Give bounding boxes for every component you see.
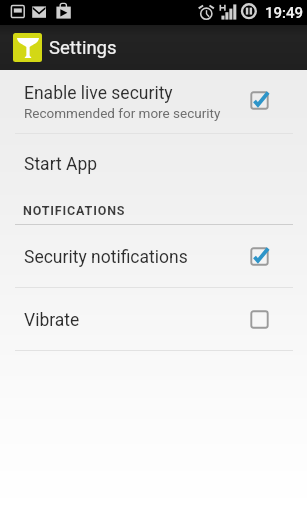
button[interactable]: Enabled	[247, 88, 272, 113]
staticText: Security notifications	[24, 247, 188, 268]
staticText: Settings	[49, 37, 117, 59]
button[interactable]: Vibrate	[0, 287, 307, 350]
button[interactable]: Security notifications	[0, 224, 307, 287]
staticText: Vibrate	[24, 310, 80, 331]
staticText: Enable live security	[24, 83, 173, 104]
staticText: Recommended for more security	[24, 105, 221, 121]
button[interactable]: Disabled	[247, 307, 272, 332]
staticText: 19:49	[265, 4, 304, 22]
staticText: Start App	[24, 154, 98, 175]
staticText: NOTIFICATIONS	[23, 203, 126, 218]
button[interactable]: App icon	[13, 33, 42, 62]
button[interactable]: Enable live security	[0, 70, 307, 133]
button[interactable]: Enabled	[247, 244, 272, 269]
button[interactable]: Start App	[0, 133, 307, 195]
